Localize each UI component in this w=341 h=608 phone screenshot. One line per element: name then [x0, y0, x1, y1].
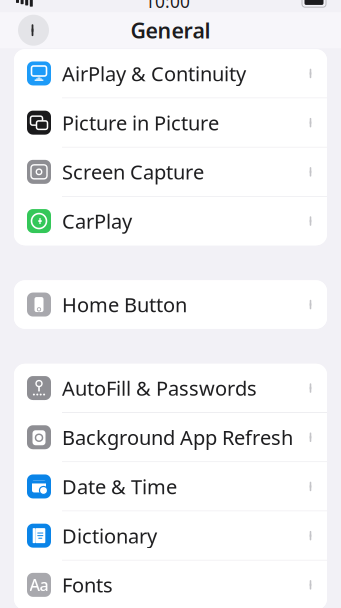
staticText: Picture in Picture	[62, 109, 219, 136]
staticText: AutoFill & Passwords	[62, 375, 257, 401]
button[interactable]: Dictionary	[14, 511, 327, 560]
button[interactable]: CarPlay	[14, 197, 327, 245]
staticText: Fonts	[62, 572, 113, 598]
staticText: Date & Time	[62, 473, 177, 500]
button[interactable]: Home Button	[14, 280, 327, 329]
staticText: Aa	[29, 574, 48, 595]
staticText: AirPlay & Continuity	[62, 60, 246, 87]
staticText: 10:00	[145, 0, 190, 13]
button[interactable]: Screen Capture	[14, 148, 327, 196]
button[interactable]: Back	[18, 15, 49, 46]
button[interactable]: Aa	[14, 561, 327, 608]
staticText: Home Button	[62, 291, 187, 318]
staticText: CarPlay	[62, 208, 132, 234]
button[interactable]: Date & Time	[14, 462, 327, 511]
button[interactable]: AutoFill & Passwords	[14, 364, 327, 412]
staticText: Dictionary	[62, 522, 157, 549]
button[interactable]: Picture in Picture	[14, 98, 327, 147]
staticText: Screen Capture	[62, 159, 204, 185]
staticText: Background App Refresh	[62, 424, 293, 451]
staticText: General	[130, 16, 210, 44]
button[interactable]: Background App Refresh	[14, 413, 327, 461]
button[interactable]: AirPlay & Continuity	[14, 49, 327, 98]
